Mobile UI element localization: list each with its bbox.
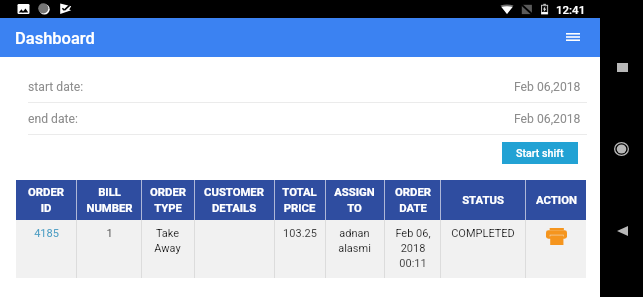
staticText: adnan alasmi (338, 227, 371, 255)
staticText: ORDER ID (28, 186, 64, 215)
staticText: Dashboard (15, 29, 95, 48)
button[interactable]: start date: (28, 79, 581, 95)
staticText: ORDER DATE (395, 186, 431, 215)
staticText: ACTION (536, 194, 577, 207)
button[interactable]: Start shift (502, 142, 578, 164)
staticText: Feb 06,2018 (514, 80, 581, 94)
button[interactable]: Recents (607, 52, 637, 82)
staticText: Start shift (516, 147, 564, 160)
button[interactable]: Home (606, 134, 636, 164)
staticText: Feb 06, 2018 00:11 (395, 227, 431, 270)
staticText: TOTAL PRICE (282, 186, 317, 215)
staticText: 1 (106, 227, 113, 240)
button[interactable]: Menu (557, 21, 589, 53)
staticText: Take Away (154, 227, 181, 255)
staticText: BILL NUMBER (86, 186, 133, 215)
staticText: ORDER TYPE (150, 186, 186, 215)
button[interactable]: Back (607, 216, 637, 246)
staticText: end date: (28, 112, 78, 126)
staticText: ASSIGN TO (334, 186, 375, 215)
staticText: COMPLETED (451, 227, 515, 240)
button[interactable]: Print (544, 227, 568, 245)
button[interactable]: end date: (28, 111, 581, 127)
staticText: 4185 (34, 227, 59, 240)
staticText: 12:41 (556, 3, 586, 16)
staticText: CUSTOMER DETAILS (204, 186, 264, 215)
staticText: start date: (28, 80, 84, 94)
staticText: Feb 06,2018 (514, 112, 581, 126)
staticText: 103.25 (283, 227, 317, 240)
staticText: STATUS (462, 194, 504, 207)
